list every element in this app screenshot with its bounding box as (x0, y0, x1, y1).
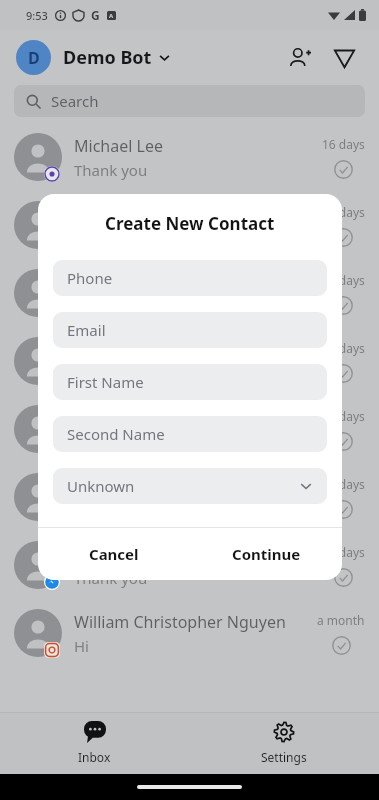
staticText: Noah Williams (74, 271, 182, 293)
staticText: D (28, 47, 40, 69)
staticText: a month (317, 612, 365, 628)
staticText: Second Name (67, 424, 165, 444)
staticText: A (109, 12, 114, 20)
button[interactable]: Unknown (53, 468, 327, 504)
staticText: G (91, 7, 100, 23)
staticText: 22 days (322, 476, 365, 492)
button[interactable]: D (14, 38, 173, 77)
staticText: Unknown (67, 476, 135, 496)
staticText: Email (67, 320, 106, 340)
staticText: 18 days (322, 340, 365, 356)
button[interactable]: Liam Brown (0, 395, 379, 463)
staticText: 16 days (322, 136, 365, 152)
button[interactable]: First Name (53, 364, 327, 400)
staticText: 16 days (322, 272, 365, 288)
staticText: Thank you (74, 228, 148, 248)
staticText: Ethan Anderson (74, 543, 195, 565)
button[interactable]: Continue (190, 528, 342, 580)
button[interactable]: Inbox (0, 712, 189, 774)
staticText: Create New Contact (105, 212, 275, 235)
button[interactable]: Emma Johnson (0, 327, 379, 395)
staticText: Thank you (74, 432, 148, 452)
staticText: Thank you (74, 296, 148, 316)
staticText: First Name (67, 372, 144, 392)
staticText: Demo Bot (63, 45, 152, 70)
staticText: Search (51, 91, 99, 111)
button[interactable]: Cancel (38, 528, 190, 580)
staticText: Continue (232, 544, 301, 564)
staticText: Olivia Martin (74, 203, 171, 225)
button[interactable]: Noah Williams (0, 259, 379, 327)
staticText: Hi (74, 636, 89, 656)
button[interactable]: Ethan Anderson (0, 531, 379, 599)
staticText: 9:53 (26, 8, 48, 23)
button[interactable]: Phone (53, 260, 327, 296)
staticText: Thank you (74, 500, 148, 520)
button[interactable]: Email (53, 312, 327, 348)
staticText: Thank you (74, 364, 148, 384)
button[interactable]: Ava Davis (0, 463, 379, 531)
button[interactable]: Filter (325, 39, 363, 77)
button[interactable]: Search (14, 85, 365, 117)
staticText: Inbox (78, 749, 111, 765)
staticText: Emma Johnson (74, 339, 188, 361)
staticText: Michael Lee (74, 135, 163, 157)
staticText: Thank you (74, 160, 148, 180)
staticText: Cancel (89, 544, 139, 564)
button[interactable]: William Christopher Nguyen (0, 599, 379, 667)
button[interactable]: Add contact (281, 39, 319, 77)
button[interactable]: Settings (189, 712, 379, 774)
staticText: Phone (67, 268, 113, 288)
staticText: Settings (261, 749, 307, 765)
staticText: William Christopher Nguyen (74, 611, 286, 633)
staticText: 16 days (322, 204, 365, 220)
staticText: 16 days (322, 544, 365, 560)
button[interactable]: Second Name (53, 416, 327, 452)
staticText: Ava Davis (74, 475, 147, 497)
staticText: Thank you (74, 568, 148, 588)
staticText: Liam Brown (74, 407, 164, 429)
button[interactable]: Olivia Martin (0, 191, 379, 259)
staticText: 20 days (322, 408, 365, 424)
button[interactable]: Michael Lee (0, 123, 379, 191)
